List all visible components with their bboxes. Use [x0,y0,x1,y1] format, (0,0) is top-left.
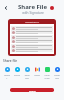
button[interactable]: AGREEMENT [8,19,56,56]
staticText: Twitter [4,74,10,80]
staticText: Share File [18,3,47,11]
staticText: Facebook [54,74,60,80]
button[interactable]: WhatsApp [44,67,50,80]
staticText: AGREEMENT [25,20,40,23]
button[interactable]: Telegram [24,67,30,80]
button[interactable]: Share [10,88,54,92]
staticText: Telegram [24,74,30,80]
button[interactable]: Twitter [4,67,10,80]
button[interactable]: Profile [48,4,55,11]
staticText: with Signature [22,11,44,15]
staticText: Skype [14,74,20,77]
staticText: Gmail [34,74,40,77]
button[interactable]: Skype [14,67,20,77]
button[interactable]: Gmail [34,67,40,77]
staticText: Share file [3,59,18,63]
button[interactable]: Facebook [54,67,60,80]
staticText: Share [29,89,36,92]
staticText: WhatsApp [44,74,50,80]
button[interactable]: Back [2,4,9,11]
